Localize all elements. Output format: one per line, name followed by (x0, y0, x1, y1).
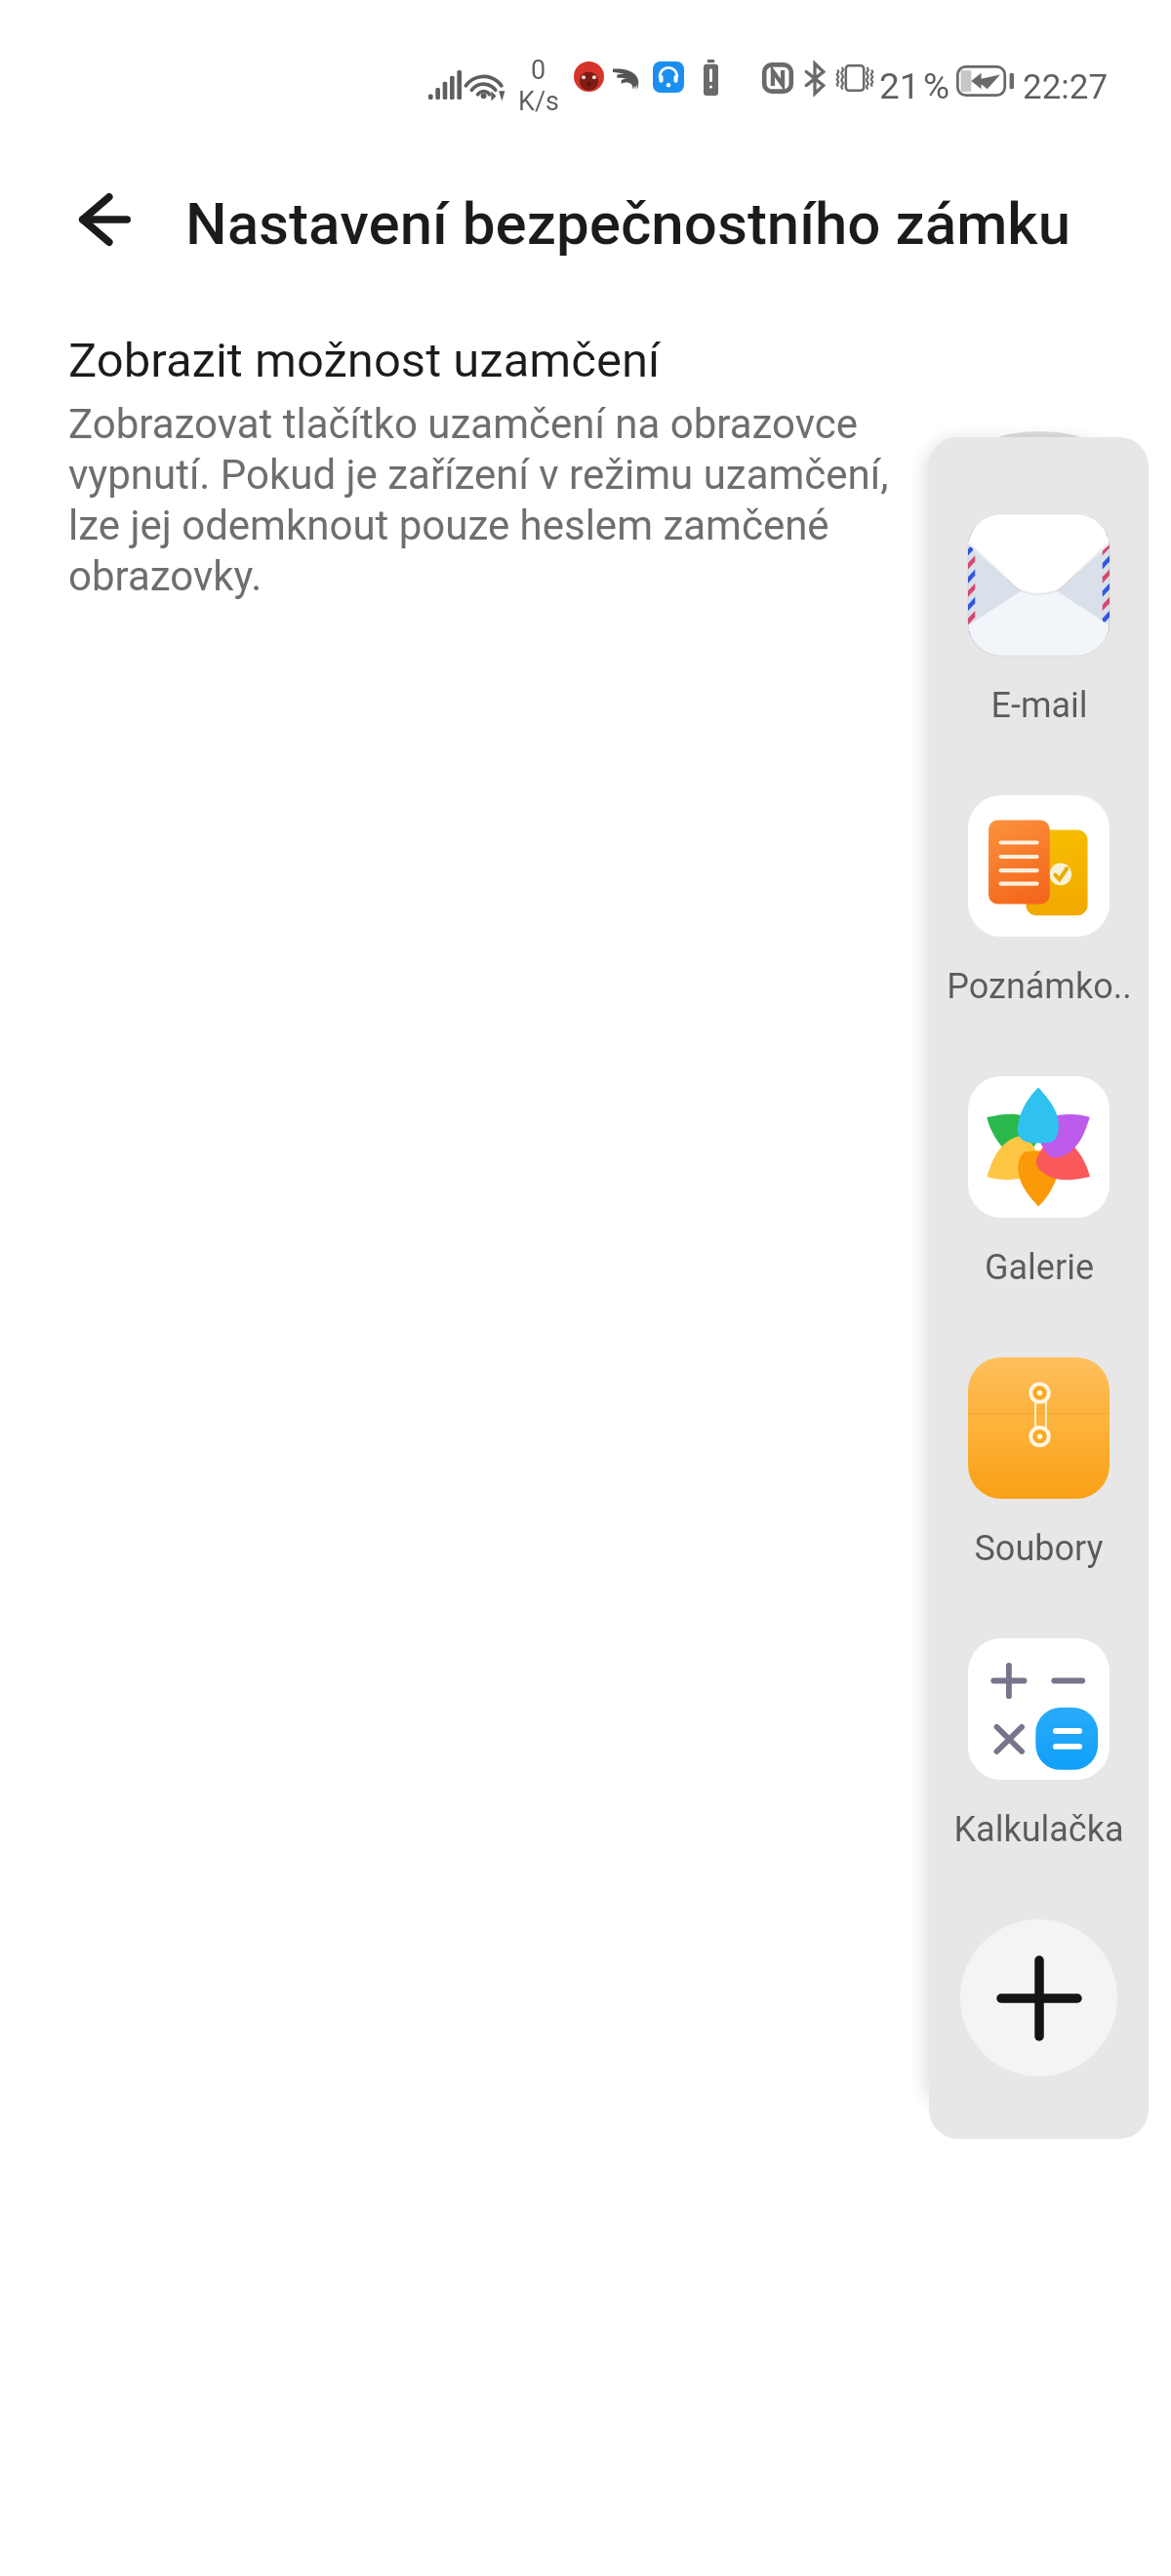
button[interactable]: Back (45, 160, 164, 279)
staticText: Nastavení bezpečnostního zámku (185, 189, 1071, 258)
staticText: % (923, 65, 950, 107)
staticText: Zobrazit možnost uzamčení (68, 333, 661, 388)
staticText: Galerie (985, 1247, 1094, 1288)
staticText: Kalkulačka (953, 1809, 1124, 1850)
staticText: K/s (518, 86, 560, 117)
button[interactable]: Add app (960, 1919, 1117, 2076)
button[interactable]: Galerie (929, 1076, 1149, 1357)
staticText: 21 (879, 65, 920, 107)
staticText: 22:27 (1023, 67, 1109, 107)
staticText: Poznámko.. (947, 966, 1132, 1007)
button[interactable]: E-mail (929, 514, 1149, 795)
staticText: E-mail (990, 685, 1088, 726)
staticText: Soubory (974, 1528, 1104, 1569)
button[interactable]: Soubory (929, 1357, 1149, 1638)
staticText: Zobrazovat tlačítko uzamčení na obrazovc… (68, 400, 908, 600)
staticText: 0 (531, 55, 546, 86)
button[interactable]: Poznámko.. (929, 795, 1149, 1076)
button[interactable]: Kalkulačka (929, 1638, 1149, 1919)
